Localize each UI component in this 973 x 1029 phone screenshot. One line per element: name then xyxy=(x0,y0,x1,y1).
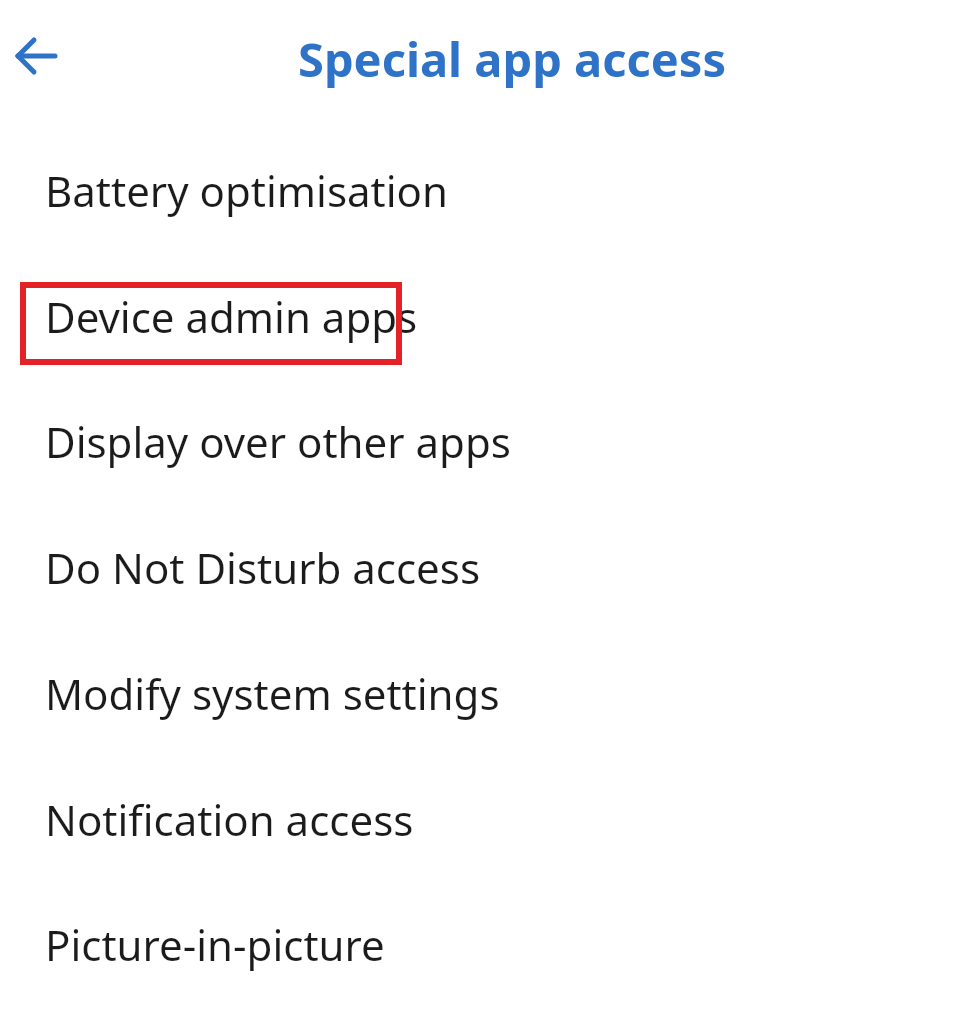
staticText: Picture-in-picture xyxy=(45,916,385,973)
staticText: Do Not Disturb access xyxy=(45,539,481,596)
button[interactable]: Notification access xyxy=(0,788,973,850)
button[interactable]: Modify system settings xyxy=(0,662,973,724)
staticText: Device admin apps xyxy=(45,288,418,345)
button[interactable]: Picture-in-picture xyxy=(0,913,973,975)
staticText: Modify system settings xyxy=(45,665,500,722)
button[interactable]: Do Not Disturb access xyxy=(0,536,973,598)
button[interactable]: Display over other apps xyxy=(0,410,973,472)
staticText: Display over other apps xyxy=(45,413,511,470)
staticText: Notification access xyxy=(45,791,414,848)
button[interactable]: Back xyxy=(4,24,68,88)
button[interactable]: Device admin apps xyxy=(0,285,973,347)
staticText: Special app access xyxy=(262,27,762,91)
button[interactable]: Battery optimisation xyxy=(0,159,973,221)
staticText: Battery optimisation xyxy=(45,162,448,219)
